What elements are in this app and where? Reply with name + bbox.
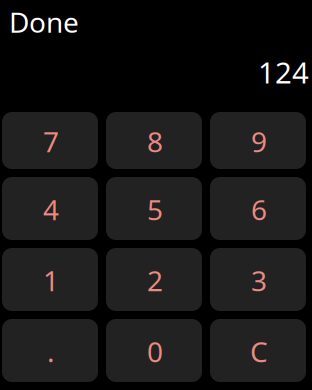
staticText: 5 <box>147 191 163 228</box>
button[interactable]: Done <box>9 7 89 37</box>
staticText: 2 <box>147 262 163 299</box>
staticText: Done <box>9 3 79 41</box>
button[interactable]: 4 <box>2 177 98 240</box>
staticText: . <box>47 333 55 370</box>
staticText: 3 <box>251 262 267 299</box>
button[interactable]: 5 <box>106 177 202 240</box>
staticText: 7 <box>43 123 59 160</box>
button[interactable]: 2 <box>106 248 202 311</box>
staticText: 0 <box>147 333 163 370</box>
button[interactable]: Clear <box>210 319 306 382</box>
button[interactable]: 8 <box>106 112 202 169</box>
button[interactable]: 0 <box>106 319 202 382</box>
staticText: C <box>250 333 268 370</box>
staticText: 6 <box>251 191 267 228</box>
staticText: 9 <box>251 123 267 160</box>
staticText: 124 <box>258 52 309 91</box>
staticText: 8 <box>147 123 163 160</box>
button[interactable]: 6 <box>210 177 306 240</box>
button[interactable]: 3 <box>210 248 306 311</box>
button[interactable]: 1 <box>2 248 98 311</box>
button[interactable]: 7 <box>2 112 98 169</box>
staticText: 1 <box>43 262 59 299</box>
button[interactable]: 9 <box>210 112 306 169</box>
staticText: 4 <box>43 191 59 228</box>
button[interactable]: Decimal point <box>2 319 98 382</box>
